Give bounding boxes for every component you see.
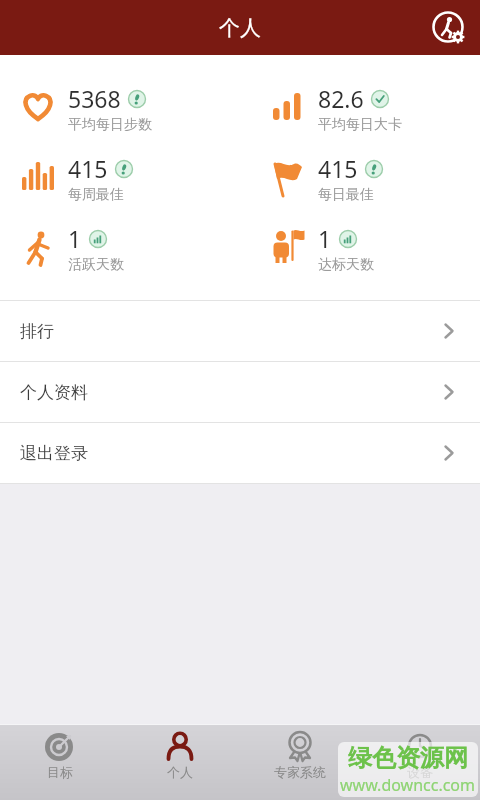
staticText: 排行 bbox=[20, 321, 54, 342]
staticText: 每日最佳 bbox=[318, 186, 374, 201]
staticText: 1 bbox=[68, 223, 82, 254]
staticText: www.downcc.com bbox=[340, 774, 476, 796]
staticText: 个人 bbox=[219, 15, 261, 41]
staticText: 个人 bbox=[167, 764, 193, 780]
button[interactable]: 设备 bbox=[360, 724, 480, 800]
staticText: 82.6 bbox=[318, 83, 364, 114]
staticText: 5368 bbox=[68, 83, 121, 114]
staticText: 平均每日大卡 bbox=[318, 116, 402, 131]
staticText: 415 bbox=[318, 153, 358, 184]
staticText: 目标 bbox=[47, 764, 73, 780]
staticText: 活跃天数 bbox=[68, 256, 124, 271]
button[interactable]: 目标 bbox=[0, 724, 120, 800]
button[interactable]: 退出登录 bbox=[0, 423, 480, 483]
button[interactable]: 个人资料 bbox=[0, 362, 480, 422]
staticText: 415 bbox=[68, 153, 108, 184]
staticText: 设备 bbox=[407, 764, 433, 780]
staticText: 平均每日步数 bbox=[68, 116, 152, 131]
button[interactable] bbox=[431, 10, 467, 46]
button[interactable]: 专家系统 bbox=[240, 724, 360, 800]
staticText: 1 bbox=[318, 223, 332, 254]
staticText: 达标天数 bbox=[318, 256, 374, 271]
staticText: 专家系统 bbox=[274, 764, 326, 780]
staticText: 每周最佳 bbox=[68, 186, 124, 201]
staticText: 个人资料 bbox=[20, 382, 88, 403]
staticText: 绿色资源网 bbox=[348, 743, 468, 773]
button[interactable]: 排行 bbox=[0, 301, 480, 361]
button[interactable]: 个人 bbox=[120, 724, 240, 800]
staticText: 退出登录 bbox=[20, 443, 88, 464]
